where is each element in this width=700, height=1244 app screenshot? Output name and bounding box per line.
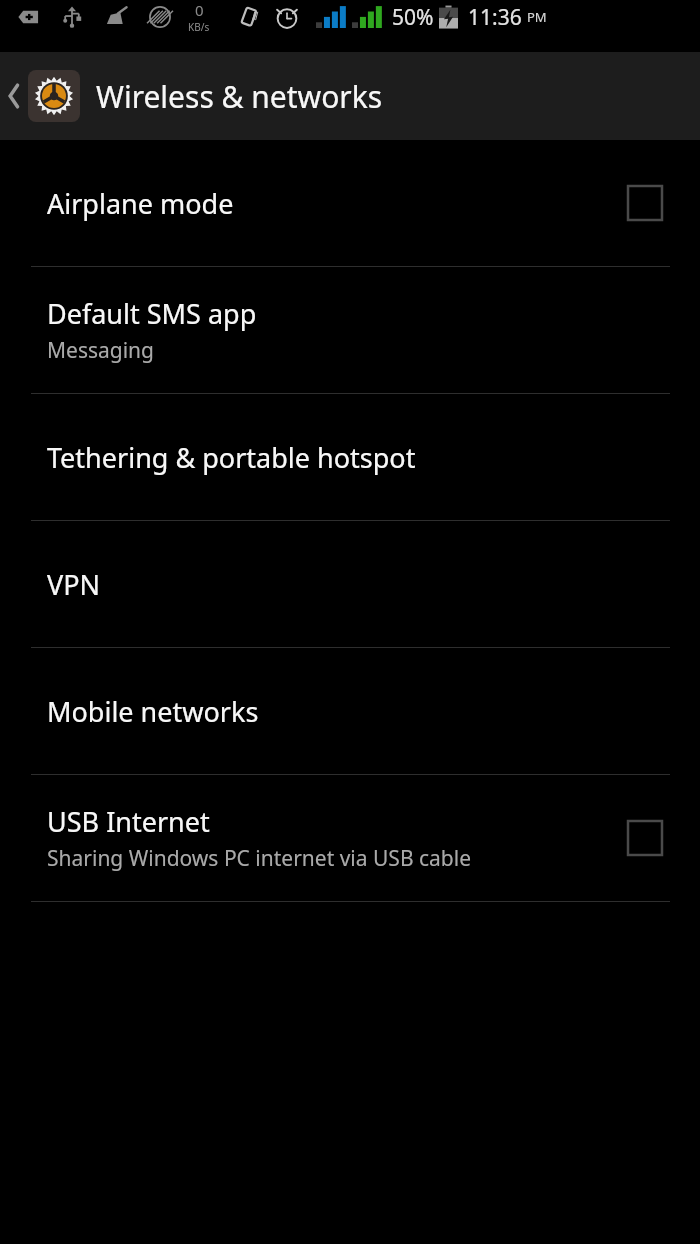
staticText: VPN <box>47 566 101 603</box>
button[interactable]: VPN <box>0 521 700 647</box>
staticText: 11:36 <box>468 3 522 32</box>
staticText: PM <box>527 8 547 26</box>
button[interactable]: USB Internet <box>0 775 700 901</box>
staticText: USB Internet <box>47 803 210 840</box>
button[interactable]: Tethering & portable hotspot <box>0 394 700 520</box>
button[interactable]: Mobile networks <box>0 648 700 774</box>
staticText: Airplane mode <box>47 185 234 222</box>
staticText: 50% <box>392 3 434 32</box>
button[interactable]: Airplane mode checkbox <box>590 186 700 220</box>
staticText: Default SMS app <box>47 295 257 332</box>
staticText: Tethering & portable hotspot <box>47 439 416 476</box>
staticText: Wireless & networks <box>96 76 383 117</box>
staticText: Mobile networks <box>47 693 259 730</box>
button[interactable]: Airplane mode <box>0 140 700 266</box>
button[interactable]: Back to Settings <box>0 52 700 140</box>
staticText: 0 <box>195 0 204 20</box>
staticText: KB/s <box>188 20 210 34</box>
staticText: Messaging <box>47 336 155 365</box>
button[interactable]: Default SMS app <box>0 267 700 393</box>
button[interactable]: USB Internet checkbox <box>590 821 700 855</box>
staticText: Sharing Windows PC internet via USB cabl… <box>47 844 472 873</box>
